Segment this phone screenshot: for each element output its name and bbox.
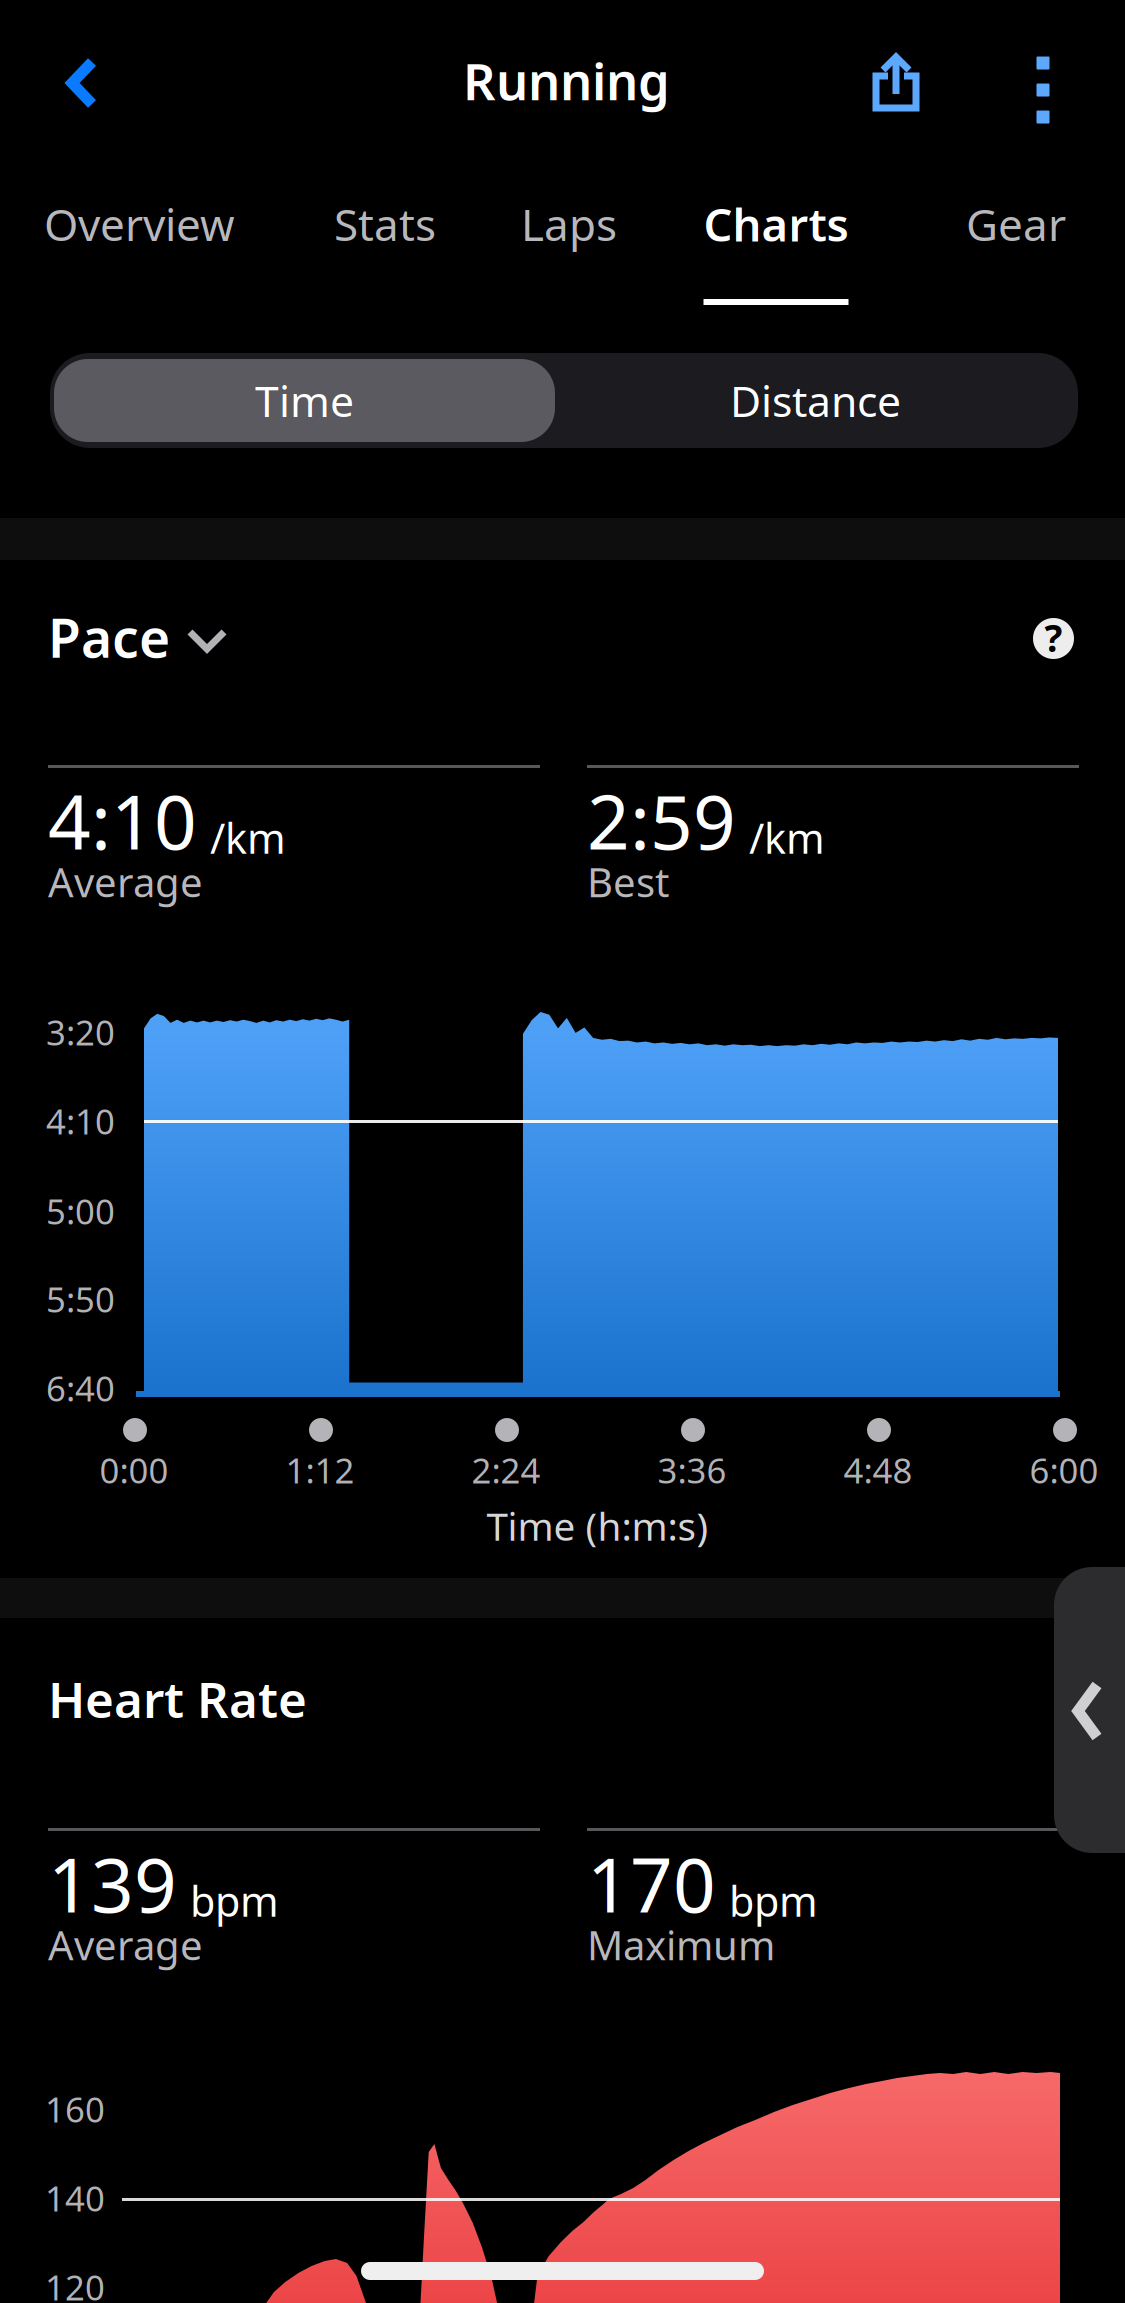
staticText: 4:48	[843, 1447, 912, 1493]
staticText: Time (h:m:s)	[486, 1500, 708, 1551]
button[interactable]: Back	[27, 23, 137, 143]
staticText: bpm	[190, 1873, 279, 1928]
staticText: 6:00	[1029, 1447, 1098, 1493]
staticText: Average	[48, 1918, 203, 1971]
staticText: 4:10	[46, 1098, 115, 1144]
staticText: bpm	[729, 1873, 818, 1928]
staticText: Running	[463, 47, 670, 114]
staticText: Distance	[730, 372, 901, 429]
staticText: Stats	[334, 195, 436, 253]
button[interactable]: Open side panel	[1054, 1567, 1125, 1853]
staticText: 6:40	[46, 1365, 115, 1411]
staticText: Gear	[966, 195, 1066, 253]
button[interactable]: Gear	[960, 176, 1072, 272]
staticText: ?	[1044, 613, 1062, 662]
staticText: 160	[45, 2086, 105, 2132]
button[interactable]: Stats	[329, 176, 441, 272]
staticText: Charts	[703, 194, 848, 254]
staticText: /km	[210, 810, 286, 865]
button[interactable]: Pace	[48, 607, 228, 667]
button[interactable]: Help	[1033, 618, 1074, 659]
staticText: Best	[587, 855, 669, 908]
staticText: 2:59	[587, 771, 736, 870]
button[interactable]: Overview	[22, 176, 257, 272]
staticText: 1:12	[285, 1447, 354, 1493]
button[interactable]: Laps	[514, 176, 624, 272]
staticText: Time	[255, 372, 354, 429]
staticText: 140	[45, 2175, 105, 2221]
staticText: Pace	[48, 602, 170, 672]
staticText: Laps	[521, 195, 617, 253]
staticText: 4:10	[48, 771, 197, 870]
staticText: 2:24	[471, 1447, 540, 1493]
staticText: 3:20	[46, 1009, 115, 1055]
staticText: Maximum	[587, 1918, 775, 1971]
staticText: 0:00	[99, 1447, 168, 1493]
button[interactable]: Charts	[690, 176, 862, 305]
staticText: 5:50	[46, 1276, 115, 1322]
button[interactable]: More options	[988, 30, 1098, 150]
staticText: 120	[45, 2264, 105, 2303]
staticText: 3:36	[657, 1447, 726, 1493]
staticText: Heart Rate	[48, 1666, 307, 1731]
staticText: /km	[749, 810, 825, 865]
staticText: Average	[48, 855, 203, 908]
button[interactable]: Share	[836, 22, 956, 142]
staticText: 5:00	[46, 1188, 115, 1234]
staticText: 139	[48, 1834, 177, 1933]
button[interactable]: Distance	[557, 359, 1074, 442]
button[interactable]: Time	[54, 359, 555, 442]
staticText: Overview	[44, 195, 235, 253]
staticText: 170	[587, 1834, 716, 1933]
